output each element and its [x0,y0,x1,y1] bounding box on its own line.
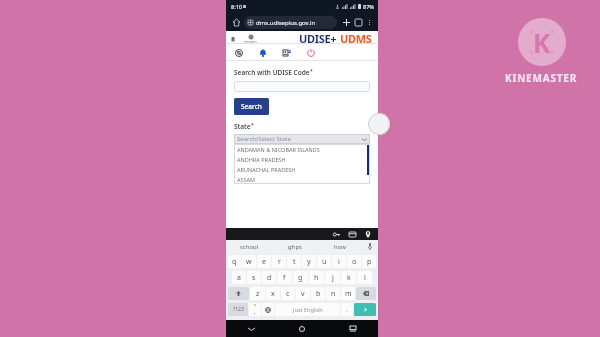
staticText: ghps [288,243,302,251]
button[interactable]: Recent apps [327,320,378,337]
button[interactable]: v [296,287,310,300]
staticText: , [254,308,256,316]
staticText: x [271,289,275,299]
staticText: t [293,257,296,267]
staticText: u [322,257,327,267]
button[interactable]: i [332,255,346,268]
button[interactable]: Voice input [362,240,378,253]
button[interactable]: Enter [354,303,376,316]
button[interactable]: o [347,255,361,268]
button[interactable]: Passwords [332,230,340,238]
button[interactable]: a [232,271,246,284]
staticText: . [346,306,348,314]
staticText: b [316,289,321,299]
staticText: z [256,289,260,299]
button[interactable]: r [272,255,286,268]
button[interactable] [234,81,370,92]
button[interactable]: Backspace [356,287,376,300]
button[interactable]: y [302,255,316,268]
button[interactable]: g [293,271,308,284]
button[interactable]: Back [226,320,276,337]
staticText: 8:10 [231,3,242,10]
staticText: 87% [363,3,374,10]
button[interactable]: z [250,287,265,300]
staticText: v [301,289,305,299]
staticText: h [314,273,319,283]
button[interactable]: l [357,271,372,284]
button[interactable]: Tabs [352,16,364,28]
button[interactable]: ARUNACHAL PRADESH [234,164,370,174]
staticText: ASSAM [237,176,256,183]
button[interactable]: ASSAM [234,174,370,184]
button[interactable]: k [341,271,356,284]
button[interactable]: school [226,240,272,253]
button[interactable]: m [341,287,355,300]
button[interactable]: t [287,255,301,268]
staticText: f [283,273,286,283]
button[interactable]: Change language [262,303,274,316]
staticText: UDMS [340,31,372,43]
button[interactable]: Just English [275,303,340,316]
button[interactable]: ANDAMAN & NICOBAR ISLANDS [234,144,370,154]
staticText: i [338,257,340,267]
button[interactable]: ?123 [228,303,248,316]
button[interactable]: Help [368,113,390,135]
button[interactable]: Addresses [364,230,372,238]
button[interactable]: Shift [228,287,249,300]
button[interactable]: w [242,255,256,268]
staticText: k [347,273,351,283]
button[interactable]: Dashboard [233,47,244,58]
button[interactable]: h [309,271,324,284]
button[interactable]: n [326,287,340,300]
staticText: l [364,273,366,283]
button[interactable]: s [247,271,261,284]
staticText: ARUNACHAL PRADESH [237,166,296,173]
button[interactable]: dms.udiseplus.gov.in [244,16,337,29]
button[interactable]: how [317,240,362,253]
button[interactable]: u [317,255,331,268]
button[interactable]: Notifications [257,47,268,58]
button[interactable]: More options [364,17,374,27]
button[interactable]: c [281,287,295,300]
staticText: m [345,289,352,299]
staticText: o [352,257,357,267]
button[interactable]: Home [230,16,243,29]
staticText: * [310,68,313,75]
button[interactable]: , [249,303,261,316]
button[interactable]: ghps [272,240,317,253]
button[interactable]: d [262,271,276,284]
button[interactable]: Logout [305,47,316,58]
button[interactable]: Home [276,320,327,337]
button[interactable]: Profile [281,47,292,58]
staticText: ?123 [233,306,244,313]
staticText: j [332,273,334,283]
staticText: Search with UDISE Code [234,68,310,77]
button[interactable]: Payment methods [348,230,356,238]
staticText: e [262,257,266,267]
staticText: y [307,257,311,267]
button[interactable]: . [341,303,353,316]
button[interactable]: New tab [340,16,352,28]
button[interactable]: b [311,287,325,300]
staticText: State [234,122,251,131]
staticText: p [367,257,372,267]
button[interactable]: j [325,271,340,284]
staticText: a [237,273,241,283]
button[interactable]: q [228,255,241,268]
staticText: n [331,289,336,299]
button[interactable]: Search/Select State [234,134,370,144]
staticText: KINEMASTER [505,71,578,85]
button[interactable]: ANDHRA PRADESH [234,154,370,164]
staticText: * [251,122,254,129]
staticText: ANDHRA PRADESH [237,156,286,163]
staticText: c [286,289,290,299]
staticText: school [240,243,259,251]
staticText: मानव संसाधन [244,40,257,43]
button[interactable]: Search [234,98,269,115]
button[interactable]: x [266,287,280,300]
button[interactable]: p [362,255,376,268]
staticText: Search/Select State [237,135,291,143]
button[interactable]: e [257,255,271,268]
staticText: w [246,257,252,267]
button[interactable]: f [277,271,292,284]
